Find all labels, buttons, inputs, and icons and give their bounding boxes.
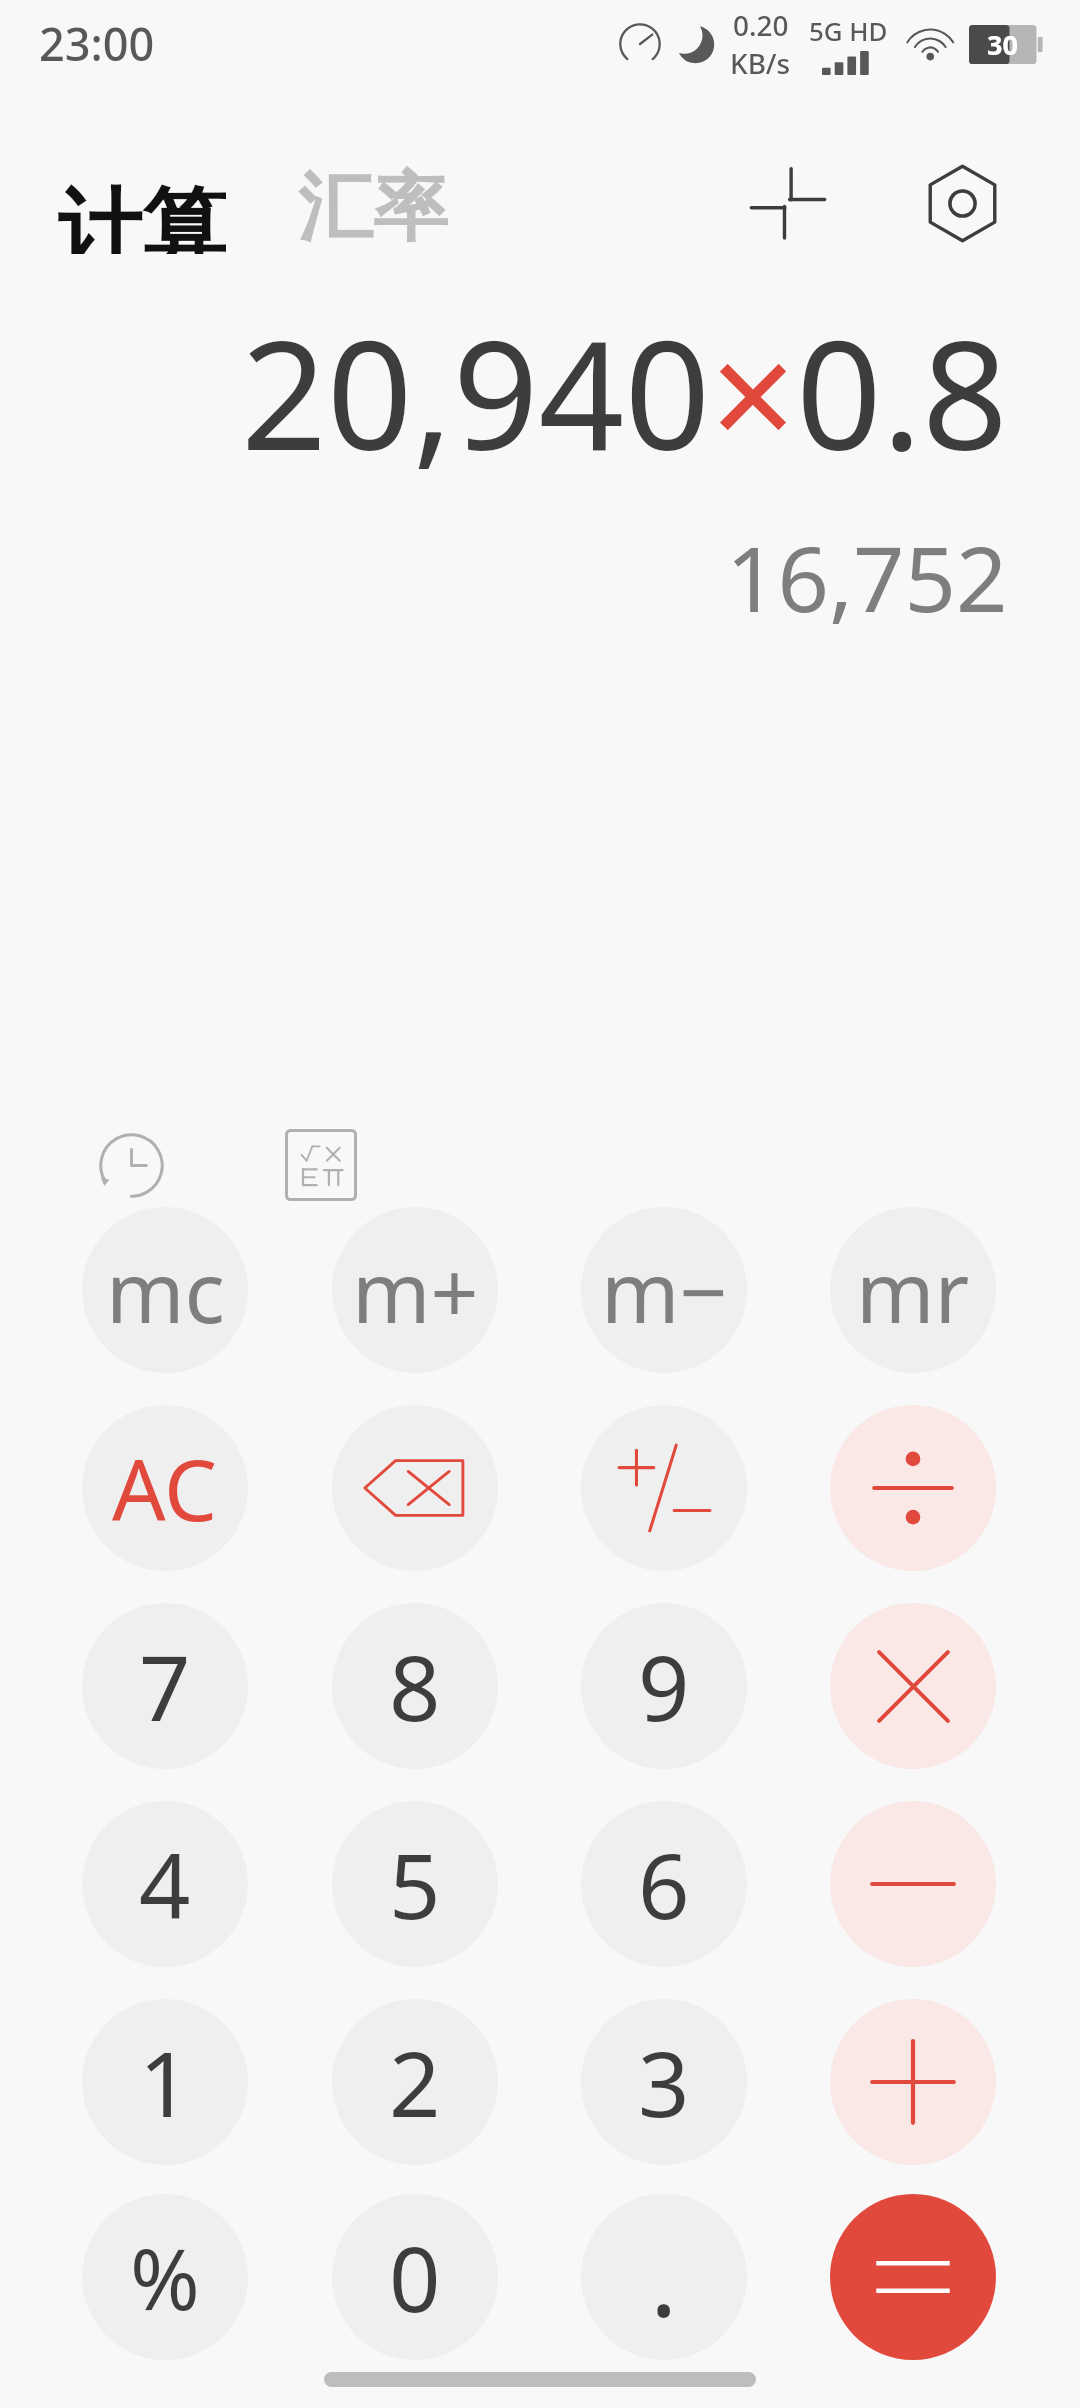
staticText: 0 — [389, 2216, 441, 2339]
button[interactable]: 4 — [82, 1801, 248, 1967]
button[interactable]: % — [82, 2194, 248, 2360]
staticText: 2 — [389, 2021, 441, 2144]
button[interactable]: Scientific mode — [246, 1090, 396, 1240]
staticText: m− — [601, 1233, 728, 1347]
staticText: KB/s — [730, 44, 791, 82]
staticText: mr — [856, 1233, 970, 1347]
staticText: 9 — [638, 1625, 690, 1748]
button[interactable]: AC — [82, 1405, 248, 1571]
button[interactable]: Add — [830, 1999, 996, 2165]
staticText: 5G HD — [809, 13, 888, 48]
staticText: mc — [106, 1233, 225, 1347]
button[interactable]: Settings — [890, 158, 1034, 248]
staticText: 16,752 — [726, 516, 1008, 639]
button[interactable]: 6 — [581, 1801, 747, 1967]
staticText: m+ — [352, 1233, 479, 1347]
staticText: % — [130, 2220, 200, 2334]
button[interactable]: 3 — [581, 1999, 747, 2165]
button[interactable]: 8 — [332, 1603, 498, 1769]
button[interactable]: mc — [82, 1207, 248, 1373]
staticText: 6 — [638, 1823, 690, 1946]
staticText: . — [650, 2208, 678, 2347]
button[interactable]: 1 — [82, 1999, 248, 2165]
button[interactable]: History — [56, 1090, 206, 1240]
button[interactable]: Backspace — [332, 1405, 498, 1571]
button[interactable]: 9 — [581, 1603, 747, 1769]
staticText: 7 — [139, 1625, 191, 1748]
button[interactable]: m− — [581, 1207, 747, 1373]
button[interactable]: 2 — [332, 1999, 498, 2165]
button[interactable]: 5 — [332, 1801, 498, 1967]
button[interactable]: mr — [830, 1207, 996, 1373]
button[interactable]: 0 — [332, 2194, 498, 2360]
button[interactable]: Multiply — [830, 1603, 996, 1769]
button[interactable]: Divide — [830, 1405, 996, 1571]
button[interactable]: . — [581, 2194, 747, 2360]
staticText: 23:00 — [39, 13, 155, 74]
staticText: 0.20 — [733, 6, 789, 44]
button[interactable]: Plus minus sign — [581, 1405, 747, 1571]
staticText: 1 — [139, 2021, 191, 2144]
button[interactable]: Collapse — [716, 158, 860, 248]
staticText: AC — [112, 1431, 218, 1545]
staticText: 3 — [638, 2021, 690, 2144]
button[interactable]: 汇率 — [286, 170, 460, 260]
button[interactable]: 7 — [82, 1603, 248, 1769]
button[interactable]: Equals — [830, 2194, 996, 2360]
staticText: 20,940×0.8 — [241, 290, 1008, 494]
staticText: 计算 — [58, 176, 226, 254]
staticText: 5 — [389, 1823, 441, 1946]
staticText: 4 — [139, 1823, 191, 1946]
staticText: 30 — [987, 26, 1018, 63]
staticText: 8 — [389, 1625, 441, 1748]
staticText: 汇率 — [298, 161, 448, 251]
button[interactable]: m+ — [332, 1207, 498, 1373]
button[interactable]: Subtract — [830, 1801, 996, 1967]
button[interactable]: 计算 — [46, 170, 238, 260]
